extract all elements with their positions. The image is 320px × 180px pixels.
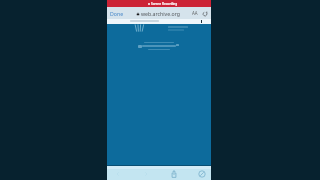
button[interactable]: Reload	[201, 10, 208, 17]
button[interactable]: Share	[168, 168, 179, 179]
button[interactable]: Back	[112, 168, 123, 179]
staticText: AA	[192, 10, 198, 16]
button[interactable]: Text size	[192, 8, 198, 18]
staticText: Done	[110, 10, 124, 17]
button[interactable]: Tabs	[196, 168, 207, 179]
staticText: web.archive.org	[141, 10, 180, 17]
button[interactable]: Done	[110, 8, 124, 19]
staticText: Screen Recording	[151, 2, 178, 6]
button[interactable]: Forward	[140, 168, 151, 179]
